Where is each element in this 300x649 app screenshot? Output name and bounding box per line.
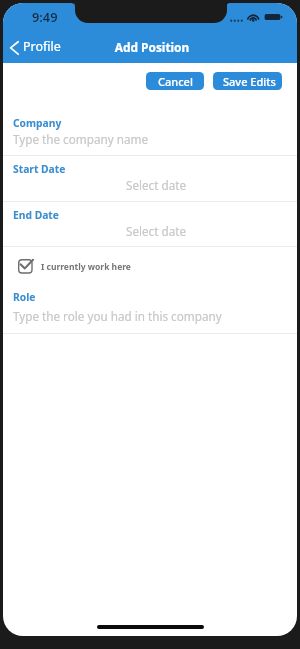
button[interactable]: I currently work here <box>11 253 143 281</box>
staticText: Select date <box>9 177 297 193</box>
staticText: Type the company name <box>13 131 148 147</box>
other: Signal, Wi-Fi and battery status <box>228 9 290 27</box>
staticText: Add Position <box>5 39 297 55</box>
button[interactable]: Cancel <box>146 72 204 90</box>
button[interactable]: Profile <box>7 36 69 59</box>
staticText: Cancel <box>158 74 193 89</box>
staticText: Company <box>13 116 62 130</box>
button[interactable]: Role <box>3 285 297 333</box>
button[interactable]: Start Date <box>3 156 297 201</box>
staticText: I currently work here <box>41 261 131 273</box>
staticText: Role <box>13 290 36 304</box>
button[interactable]: End Date <box>3 202 297 246</box>
staticText: 9:49 <box>32 8 58 25</box>
staticText: Profile <box>23 38 61 55</box>
staticText: Start Date <box>13 162 66 176</box>
staticText: End Date <box>13 208 59 222</box>
button[interactable]: Save Edits <box>213 72 282 90</box>
staticText: Select date <box>9 223 297 239</box>
staticText: Type the role you had in this company <box>13 308 222 324</box>
staticText: Save Edits <box>223 74 276 89</box>
button[interactable]: Company <box>3 104 297 155</box>
